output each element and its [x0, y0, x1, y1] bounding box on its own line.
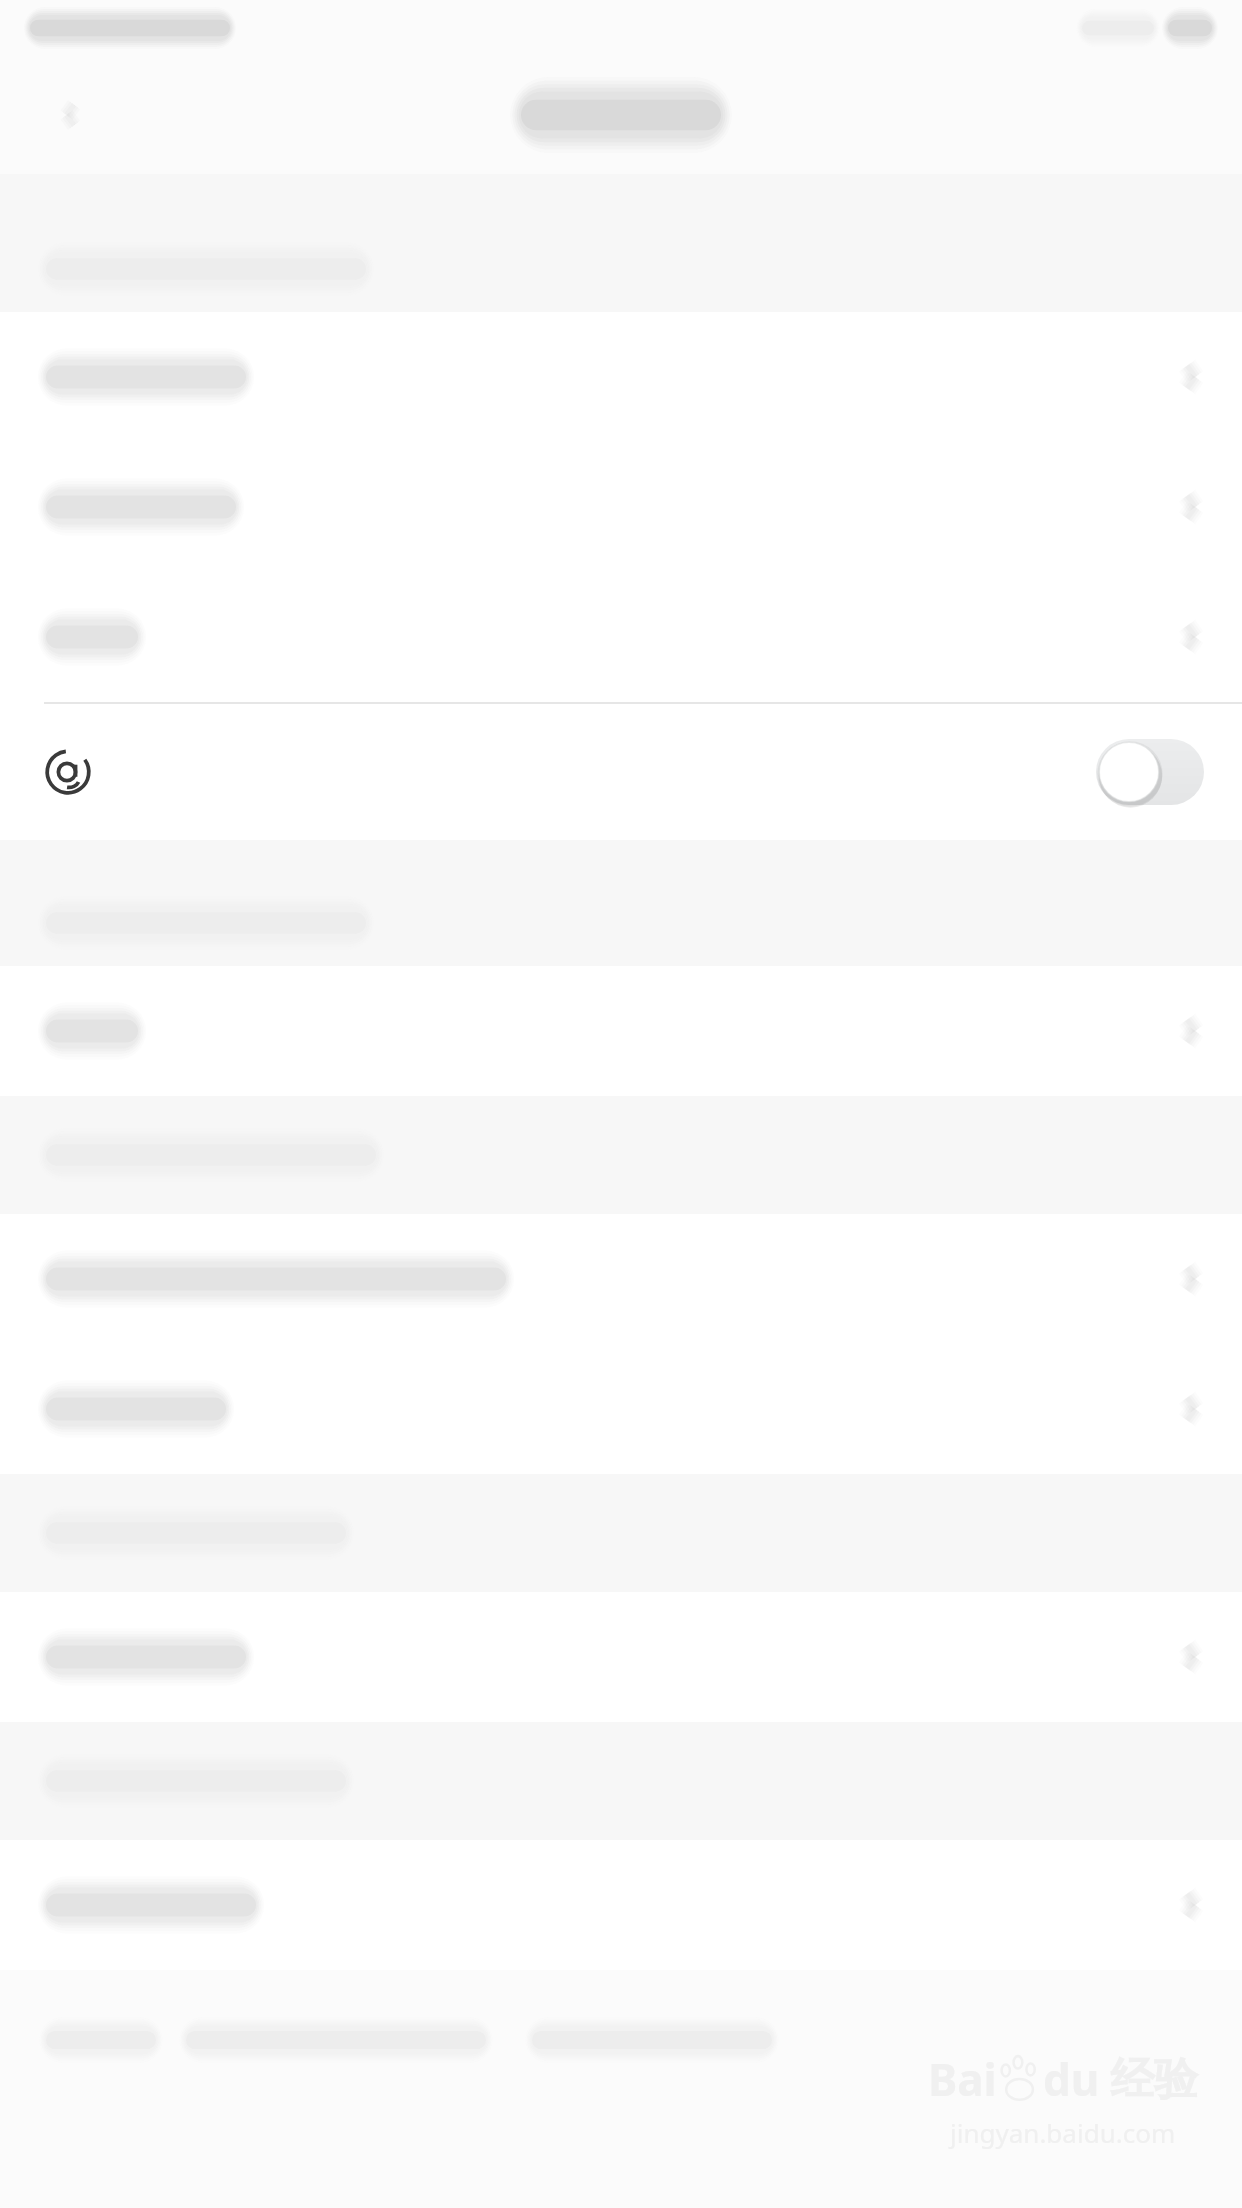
staticText: du: [1043, 2049, 1100, 2109]
button[interactable]: [0, 442, 1242, 572]
button[interactable]: [0, 1592, 1242, 1722]
button[interactable]: [0, 966, 1242, 1096]
button[interactable]: [0, 1344, 1242, 1474]
button[interactable]: [0, 1214, 1242, 1344]
button[interactable]: [0, 572, 1242, 702]
button[interactable]: Toggle setting: [0, 704, 1242, 840]
button[interactable]: [0, 312, 1242, 442]
staticText: Bai: [928, 2049, 997, 2109]
button[interactable]: Toggle setting: [1096, 739, 1204, 805]
staticText: 经验: [1110, 2052, 1198, 2107]
button[interactable]: [0, 1840, 1242, 1970]
staticText: jingyan.baidu.com: [950, 2115, 1176, 2150]
